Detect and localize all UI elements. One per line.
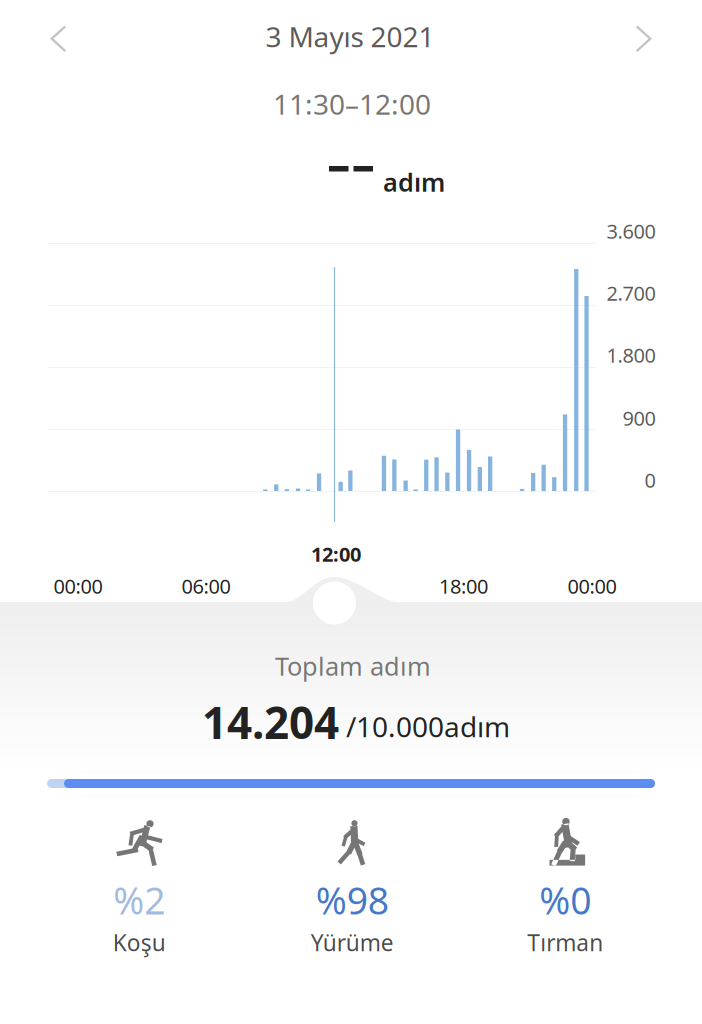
staticText: %98 [316,875,389,925]
staticText: 00:00 [53,573,102,599]
staticText: 00:00 [567,573,616,599]
staticText: adım [383,165,445,199]
staticText: 12:00 [311,541,361,567]
staticText: 06:00 [181,573,230,599]
staticText: 1.800 [606,342,655,368]
button[interactable]: %2 [33,804,246,954]
staticText: 3.600 [606,218,655,244]
staticText: 11:30–12:00 [273,85,431,123]
staticText: Yürüme [311,927,394,957]
staticText: %2 [113,875,165,925]
button[interactable]: Next day [613,9,675,69]
button[interactable]: Previous day [27,9,89,69]
staticText: 14.204 [202,693,339,751]
button[interactable]: %0 [459,804,672,954]
staticText: Toplam adım [275,649,431,683]
staticText: 900 [622,405,655,431]
staticText: 2.700 [606,280,655,306]
staticText: Koşu [113,927,166,957]
staticText: %0 [539,875,591,925]
staticText: 3 Mayıs 2021 [265,18,434,55]
staticText: 18:00 [439,573,488,599]
button[interactable]: %98 [246,804,459,954]
staticText: Tırman [527,927,603,957]
staticText: /10.000adım [346,708,510,745]
staticText: 0 [644,467,655,493]
